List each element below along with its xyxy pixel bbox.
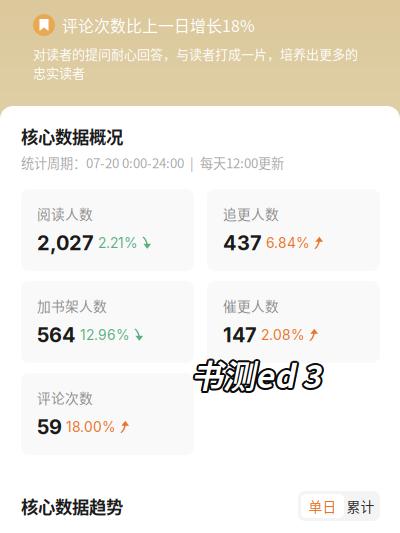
staticText: 书测ed 3: [191, 351, 321, 397]
staticText: 对读者的提问耐心回答，与读者打成一片，培养出更多的忠实读者: [33, 44, 358, 82]
staticText: 书测ed 3: [190, 350, 320, 396]
staticText: 书测ed 3: [189, 351, 319, 397]
staticText: 追更人数: [223, 204, 279, 223]
staticText: 核心数据概况: [21, 123, 123, 149]
staticText: 核心数据趋势: [21, 493, 123, 519]
button[interactable]: 评论次数: [21, 373, 194, 455]
staticText: 评论次数比上一日增长18%: [62, 13, 255, 36]
staticText: 书测ed 3: [192, 352, 322, 399]
button[interactable]: 加书架人数: [21, 281, 194, 363]
staticText: 437: [223, 231, 262, 255]
staticText: 书测ed 3: [193, 351, 323, 397]
staticText: 阅读人数: [37, 204, 93, 223]
button[interactable]: 单日: [301, 494, 344, 518]
staticText: 书测ed 3: [191, 349, 321, 395]
staticText: 累计: [346, 496, 374, 516]
button[interactable]: 追更人数: [207, 189, 380, 271]
staticText: 2.21%: [98, 235, 138, 251]
staticText: 加书架人数: [37, 296, 107, 315]
staticText: 147: [223, 323, 257, 347]
staticText: 评论次数: [37, 388, 93, 407]
staticText: 书测ed 3: [190, 352, 320, 399]
button[interactable]: 阅读人数: [21, 189, 194, 271]
staticText: 2.08%: [261, 327, 305, 343]
staticText: 12.96%: [80, 327, 130, 343]
staticText: 564: [37, 323, 76, 347]
button[interactable]: 催更人数: [207, 281, 380, 363]
staticText: 书测ed 3: [192, 350, 322, 396]
button[interactable]: 累计: [344, 494, 377, 518]
staticText: 催更人数: [223, 296, 279, 315]
staticText: 2,027: [37, 231, 94, 255]
staticText: 59: [37, 415, 62, 439]
staticText: 书测ed 3: [191, 353, 321, 399]
staticText: 统计周期：07-20 0:00-24:00 | 每天12:00更新: [21, 153, 284, 172]
staticText: 6.84%: [266, 235, 310, 251]
staticText: 单日: [308, 496, 336, 516]
staticText: 18.00%: [66, 419, 116, 435]
